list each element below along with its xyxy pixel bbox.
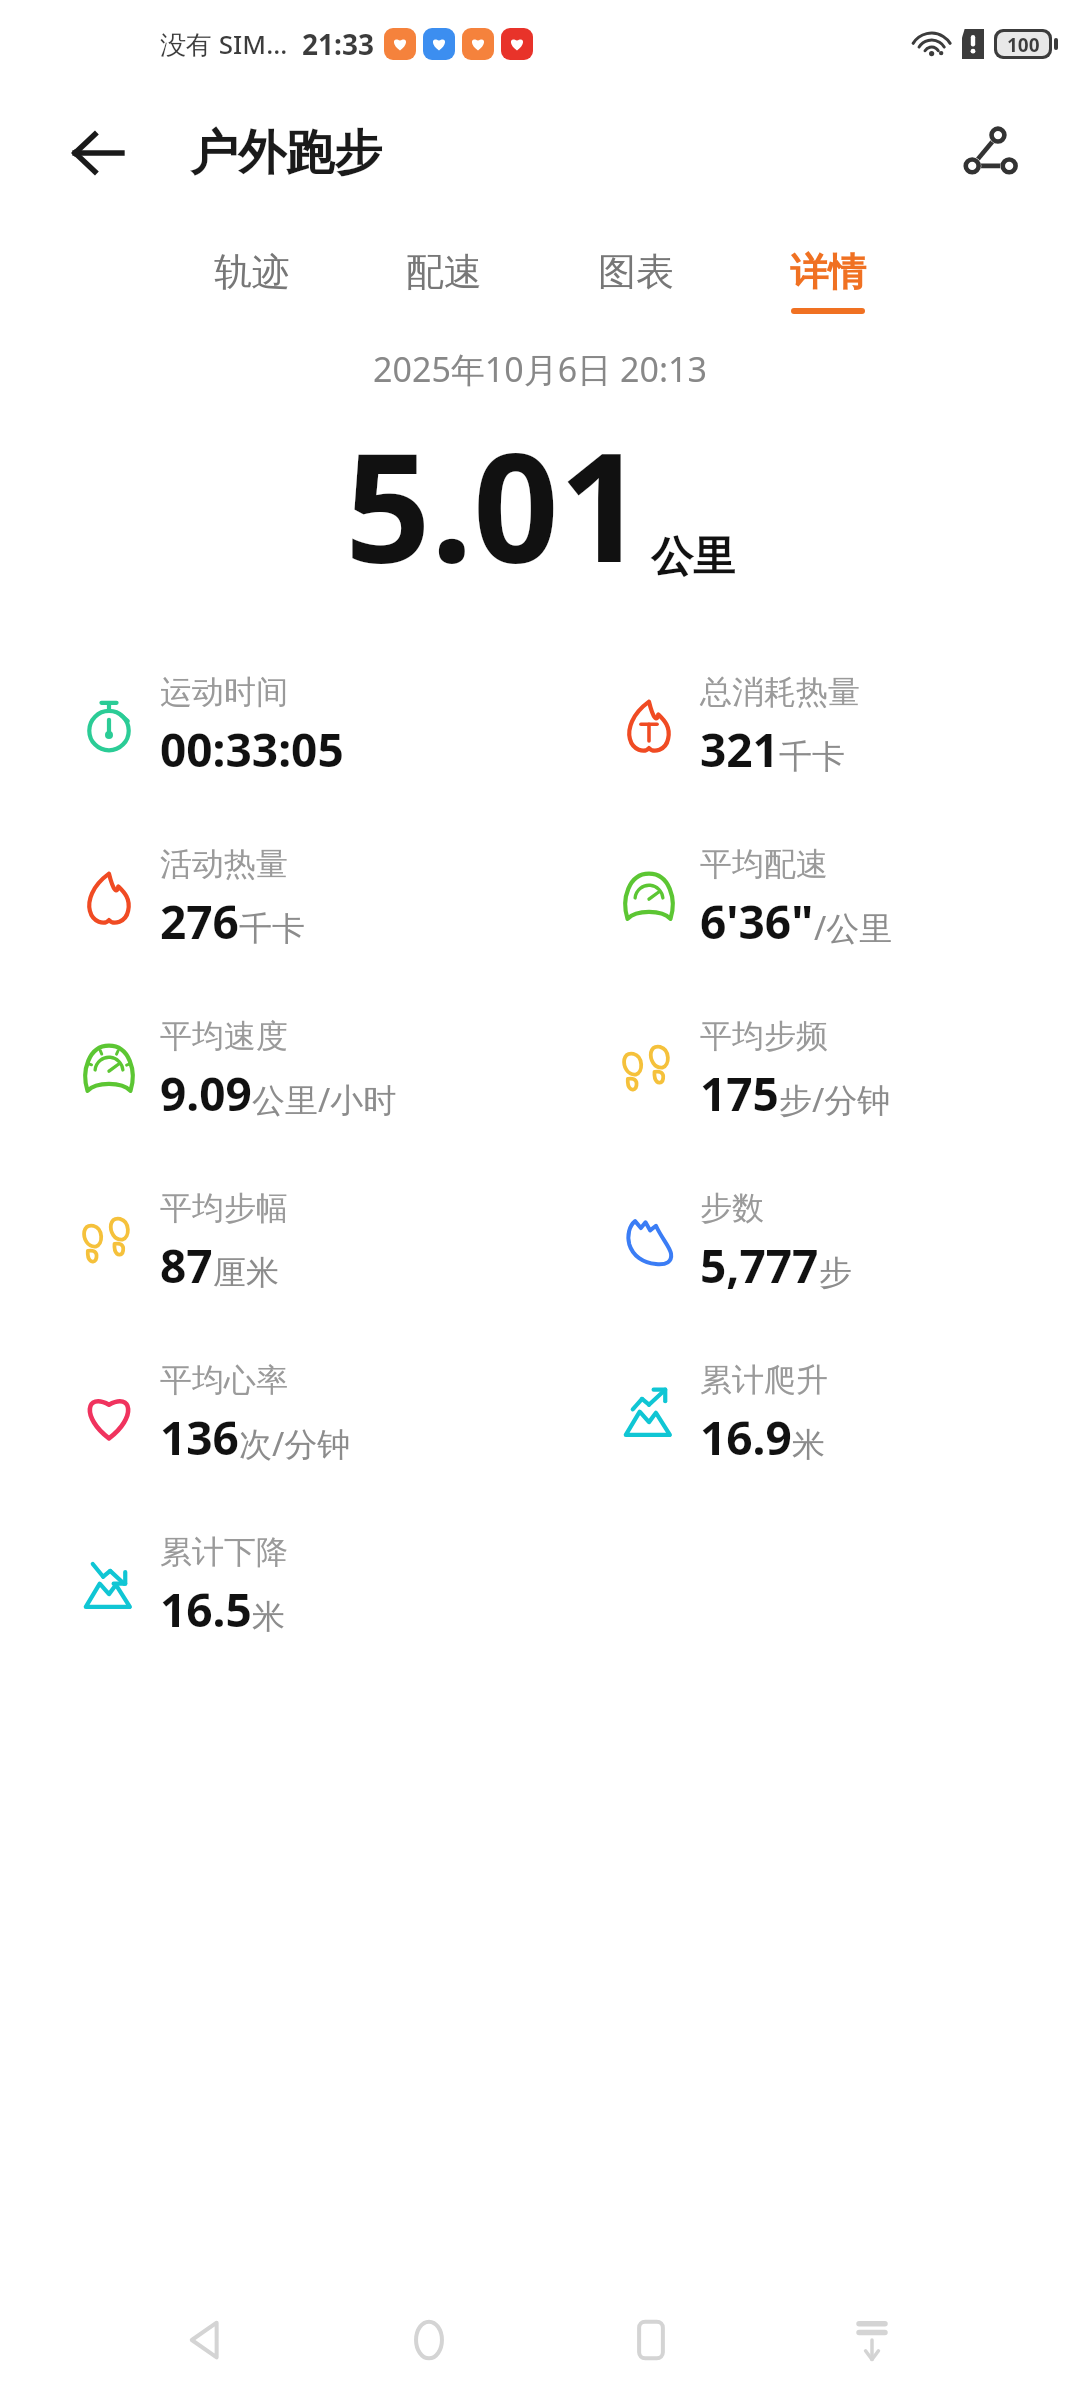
staticText: 276 [160, 890, 239, 953]
button[interactable]: 详情 [786, 246, 870, 316]
staticText: 平均心率 [160, 1360, 288, 1400]
staticText: 00:33:05 [160, 718, 344, 781]
staticText: 轨迹 [214, 248, 290, 296]
staticText: 平均速度 [160, 1016, 288, 1056]
button[interactable]: 活动热量 [0, 812, 540, 984]
staticText: 配速 [406, 248, 482, 296]
button[interactable]: 平均配速 [540, 812, 1080, 984]
staticText: /公里 [814, 905, 893, 950]
staticText: 步数 [700, 1188, 764, 1228]
button[interactable]: Recents [603, 2292, 699, 2388]
staticText: 总消耗热量 [700, 672, 860, 712]
staticText: 平均配速 [700, 844, 828, 884]
button[interactable]: 平均心率 [0, 1328, 540, 1500]
button[interactable]: Back [58, 113, 138, 193]
staticText: 321 [700, 718, 779, 781]
button[interactable]: Back [160, 2292, 256, 2388]
staticText: 运动时间 [160, 672, 288, 712]
staticText: 21:33 [302, 25, 374, 63]
button[interactable]: 总消耗热量 [540, 640, 1080, 812]
button[interactable]: Hide navigation bar [824, 2292, 920, 2388]
staticText: 米 [792, 1424, 825, 1466]
staticText: 米 [252, 1596, 285, 1638]
button[interactable]: Home [381, 2292, 477, 2388]
button[interactable]: 图表 [594, 246, 678, 316]
staticText: 5,777 [700, 1234, 819, 1297]
staticText: 累计下降 [160, 1532, 288, 1572]
button[interactable]: 平均步频 [540, 984, 1080, 1156]
staticText: 公里/小时 [252, 1077, 397, 1122]
staticText: 9.09 [160, 1062, 252, 1125]
button[interactable]: 运动时间 [0, 640, 540, 812]
staticText: 累计爬升 [700, 1360, 828, 1400]
staticText: 16.9 [700, 1406, 792, 1469]
button[interactable]: 步数 [540, 1156, 1080, 1328]
staticText: 千卡 [779, 736, 845, 778]
staticText: 户外跑步 [190, 123, 382, 183]
button[interactable]: Share [946, 110, 1032, 196]
staticText: 步 [819, 1252, 852, 1294]
button[interactable]: 配速 [402, 246, 486, 316]
staticText: 2025年10月6日 20:13 [0, 346, 1080, 392]
staticText: 175 [700, 1062, 779, 1125]
staticText: 6'36" [700, 890, 814, 953]
staticText: 步/分钟 [779, 1077, 891, 1122]
staticText: 详情 [790, 248, 866, 296]
button[interactable]: 平均步幅 [0, 1156, 540, 1328]
button[interactable]: 累计爬升 [540, 1328, 1080, 1500]
button[interactable]: 平均速度 [0, 984, 540, 1156]
staticText: 图表 [598, 248, 674, 296]
staticText: 16.5 [160, 1578, 252, 1641]
button[interactable]: 轨迹 [210, 246, 294, 316]
staticText: 公里 [651, 531, 735, 584]
staticText: 87 [160, 1234, 213, 1297]
staticText: 136 [160, 1406, 239, 1469]
staticText: 100 [1007, 32, 1040, 56]
button[interactable]: 累计下降 [0, 1500, 540, 1672]
staticText: 厘米 [213, 1252, 279, 1294]
staticText: 平均步幅 [160, 1188, 288, 1228]
staticText: 活动热量 [160, 844, 288, 884]
staticText: 平均步频 [700, 1016, 828, 1056]
staticText: 5.01 [345, 402, 645, 606]
staticText: 次/分钟 [239, 1421, 351, 1466]
staticText: 没有 SIM... [160, 26, 288, 62]
staticText: 千卡 [239, 908, 305, 950]
